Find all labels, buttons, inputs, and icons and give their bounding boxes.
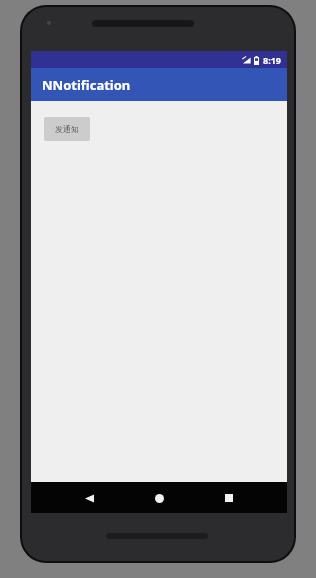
staticText: NNotification: [42, 76, 131, 94]
button[interactable]: Recent apps: [216, 485, 242, 511]
staticText: 发通知: [55, 124, 79, 134]
button[interactable]: Back: [76, 485, 102, 511]
button[interactable]: Home: [146, 485, 172, 511]
staticText: 8:19: [263, 54, 281, 66]
button[interactable]: 发通知: [44, 117, 90, 141]
